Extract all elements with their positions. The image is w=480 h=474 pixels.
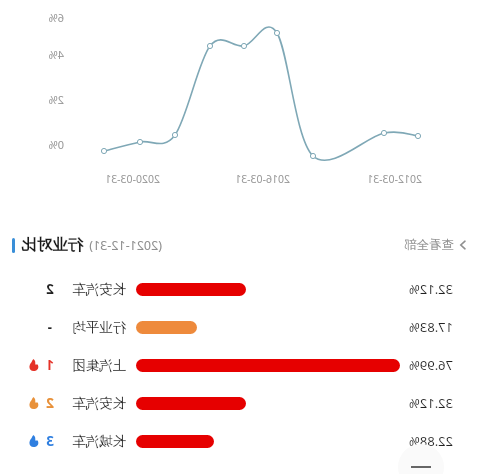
staticText: 0%	[48, 137, 64, 152]
staticText: 4%	[48, 47, 64, 62]
other: Hot	[28, 397, 40, 409]
staticText: 32.12%	[408, 280, 453, 298]
staticText: 32.12%	[408, 394, 453, 412]
staticText: 行业平均	[72, 319, 126, 336]
staticText: 查看全部	[404, 237, 454, 253]
staticText: 1	[46, 356, 54, 374]
staticText: 17.83%	[408, 318, 453, 336]
button[interactable]: 17.83%	[0, 308, 480, 346]
button[interactable]: 32.12%	[0, 270, 480, 308]
staticText: 2020-03-31	[105, 172, 160, 186]
staticText: 2	[46, 394, 54, 412]
staticText: 2016-03-31	[235, 172, 290, 186]
staticText: (2021-12-31)	[89, 237, 162, 254]
staticText: -	[47, 318, 52, 336]
staticText: 22.88%	[408, 432, 453, 450]
button[interactable]: 22.88%	[0, 422, 480, 460]
staticText: 76.99%	[408, 356, 453, 374]
staticText: 长安汽车	[72, 395, 126, 412]
button[interactable]: 76.99%	[0, 346, 480, 384]
staticText: 3	[46, 432, 54, 450]
other: Hot	[28, 359, 40, 371]
other: Hot	[28, 435, 40, 447]
staticText: 长城汽车	[72, 433, 126, 450]
button[interactable]: 32.12%	[0, 384, 480, 422]
other: View all	[458, 240, 468, 250]
button[interactable]: More	[398, 444, 444, 474]
staticText: 长安汽车	[72, 281, 126, 298]
staticText: 2	[46, 280, 54, 298]
staticText: 行业对比	[21, 235, 83, 255]
button[interactable]: View all	[404, 237, 468, 253]
staticText: 6%	[48, 10, 64, 25]
staticText: 2%	[48, 92, 64, 107]
staticText: 2012-03-31	[367, 172, 422, 186]
staticText: 上汽集团	[72, 357, 126, 374]
